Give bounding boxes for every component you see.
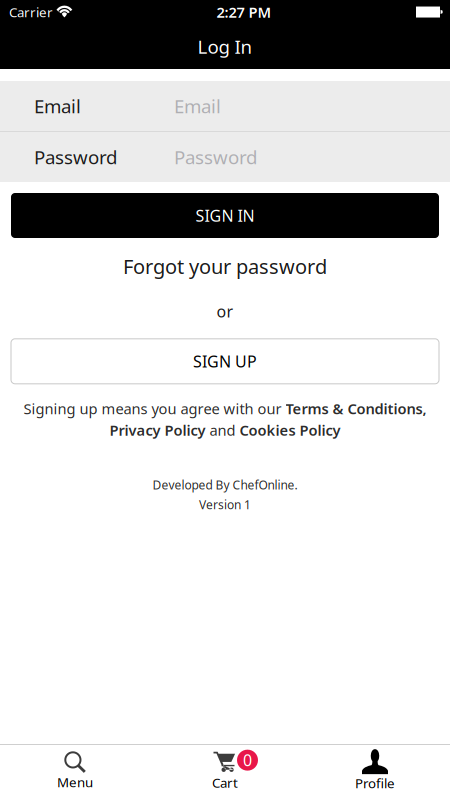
staticText: Forgot your password <box>123 253 327 280</box>
staticText: SIGN IN <box>195 205 254 226</box>
button[interactable]: Profile <box>300 745 450 800</box>
staticText: Developed By ChefOnline. <box>152 477 297 493</box>
staticText: Email <box>34 94 81 118</box>
staticText: Password <box>34 145 117 169</box>
staticText: or <box>216 301 233 322</box>
staticText: Menu <box>57 773 93 791</box>
staticText: 0 <box>243 749 252 771</box>
button[interactable]: SIGN IN <box>11 193 439 238</box>
staticText: Profile <box>355 774 395 792</box>
staticText: Version 1 <box>199 497 251 513</box>
button[interactable]: Password <box>0 132 450 182</box>
button[interactable]: Email <box>0 81 450 131</box>
staticText: Privacy Policy and Cookies Policy <box>109 420 340 440</box>
button[interactable]: SIGN UP <box>11 339 439 384</box>
button[interactable]: Menu <box>0 745 150 800</box>
staticText: Password <box>174 145 257 169</box>
staticText: 2:27 PM <box>216 2 271 22</box>
staticText: SIGN UP <box>193 351 257 372</box>
staticText: Log In <box>197 34 252 59</box>
staticText: Signing up means you agree with our Term… <box>23 399 426 418</box>
staticText: Cart <box>212 774 238 791</box>
staticText: Email <box>174 94 221 118</box>
button[interactable]: 0 <box>150 745 300 800</box>
staticText: Carrier <box>9 3 53 21</box>
